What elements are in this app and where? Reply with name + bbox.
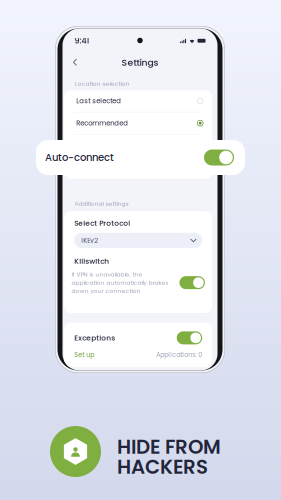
staticText: Set up <box>74 350 94 359</box>
button[interactable]: Back <box>67 53 83 72</box>
button[interactable]: IKEv2 <box>74 233 202 248</box>
button[interactable]: Set up <box>74 350 94 359</box>
button[interactable]: Last selected <box>64 90 212 112</box>
staticText: Auto-connect <box>45 150 114 164</box>
staticText: If VPN is unavailable, the application a… <box>71 270 168 295</box>
staticText: Applications: 0 <box>156 350 202 359</box>
staticText: Location selection <box>74 79 129 88</box>
button[interactable]: Recommended <box>64 112 212 134</box>
staticText: Killswitch <box>74 256 109 266</box>
staticText: HIDE FROM <box>117 433 221 461</box>
staticText: HACKERS <box>117 453 208 481</box>
staticText: 9:41 <box>74 35 89 46</box>
staticText: Exceptions <box>74 333 115 343</box>
staticText: Last selected <box>76 96 121 106</box>
staticText: Settings <box>121 56 158 69</box>
staticText: Additional settings <box>74 199 128 208</box>
staticText: Recommended <box>76 118 128 128</box>
staticText: IKEv2 <box>81 236 98 245</box>
staticText: Select Protocol <box>74 218 130 228</box>
button[interactable]: Auto-connect <box>64 135 212 156</box>
button[interactable]: Kill switch <box>64 157 212 179</box>
